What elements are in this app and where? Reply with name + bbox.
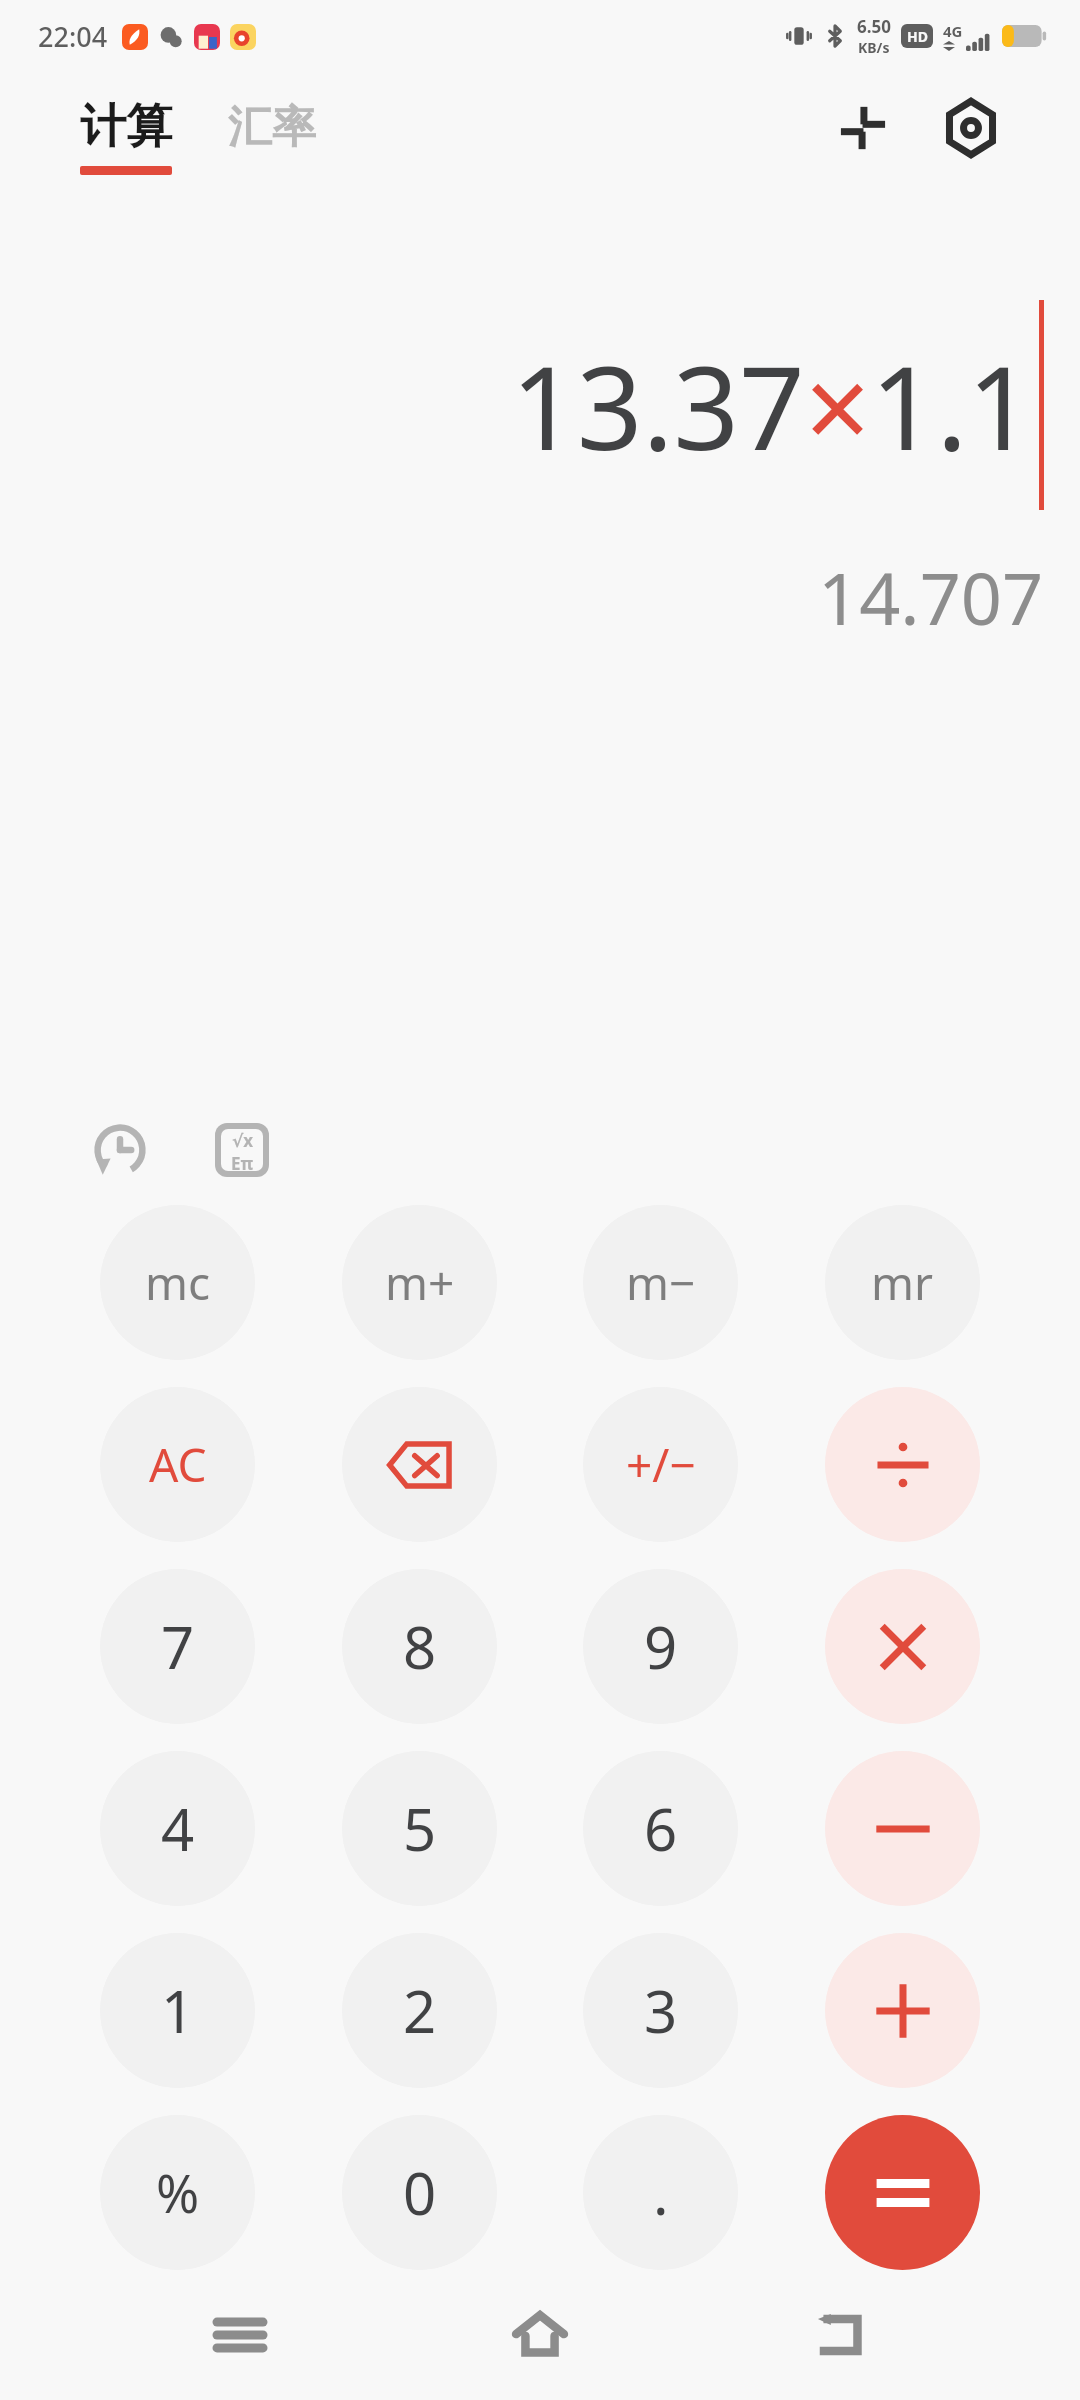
staticText: 5 <box>403 1789 437 1868</box>
button[interactable]: m− <box>583 1205 738 1360</box>
button[interactable]: 6 <box>583 1751 738 1906</box>
staticText: Eπ <box>231 1152 254 1171</box>
staticText: 3 <box>644 1971 678 2050</box>
button[interactable]: mc <box>100 1205 255 1360</box>
button[interactable]: m+ <box>342 1205 497 1360</box>
button[interactable]: % <box>100 2115 255 2270</box>
button[interactable]: 3 <box>583 1933 738 2088</box>
staticText: AC <box>149 1433 207 1496</box>
staticText: √x <box>232 1129 254 1152</box>
staticText: 计算 <box>80 98 172 156</box>
button[interactable]: Home <box>480 2275 600 2395</box>
button[interactable]: History <box>74 1104 166 1196</box>
button[interactable]: +/− <box>583 1387 738 1542</box>
button[interactable]: Divide <box>825 1387 980 1542</box>
staticText: 2 <box>403 1971 437 2050</box>
button[interactable]: Minus <box>825 1751 980 1906</box>
staticText: . <box>653 2153 669 2232</box>
button[interactable]: 计算 <box>80 98 172 175</box>
button[interactable]: Scientific <box>196 1104 288 1196</box>
staticText: m− <box>626 1251 696 1314</box>
button[interactable]: 8 <box>342 1569 497 1724</box>
staticText: 22:04 <box>38 18 108 55</box>
button[interactable]: Equals <box>825 2115 980 2270</box>
button[interactable]: . <box>583 2115 738 2270</box>
staticText: 13.37×1.1 <box>510 327 1033 484</box>
button[interactable]: 7 <box>100 1569 255 1724</box>
button[interactable]: mr <box>825 1205 980 1360</box>
staticText: 14.707 <box>818 548 1044 646</box>
button[interactable]: 汇率 <box>228 100 316 174</box>
staticText: KB/s <box>858 38 890 57</box>
staticText: % <box>156 2157 200 2228</box>
button[interactable]: Collapse <box>824 89 902 167</box>
staticText: 7 <box>161 1607 195 1686</box>
staticText: 4G <box>943 21 963 41</box>
button[interactable]: Multiply <box>825 1569 980 1724</box>
button[interactable]: 9 <box>583 1569 738 1724</box>
button[interactable]: 4 <box>100 1751 255 1906</box>
button[interactable]: Back <box>780 2275 900 2395</box>
staticText: 6.50 <box>857 15 891 38</box>
button[interactable]: Plus <box>825 1933 980 2088</box>
staticText: 9 <box>644 1607 678 1686</box>
staticText: mr <box>871 1251 934 1314</box>
button[interactable]: Recents <box>180 2275 300 2395</box>
button[interactable]: 2 <box>342 1933 497 2088</box>
staticText: +/− <box>626 1433 696 1496</box>
button[interactable]: 1 <box>100 1933 255 2088</box>
button[interactable]: Backspace <box>342 1387 497 1542</box>
staticText: m+ <box>385 1251 455 1314</box>
button[interactable]: 0 <box>342 2115 497 2270</box>
staticText: HD <box>907 27 928 46</box>
staticText: 汇率 <box>228 100 316 155</box>
staticText: 1 <box>161 1971 195 2050</box>
button[interactable]: 5 <box>342 1751 497 1906</box>
button[interactable]: AC <box>100 1387 255 1542</box>
staticText: 8 <box>403 1607 437 1686</box>
button[interactable]: Settings <box>932 89 1010 167</box>
staticText: 4 <box>161 1789 195 1868</box>
staticText: mc <box>145 1251 211 1314</box>
staticText: 6 <box>644 1789 678 1868</box>
staticText: 0 <box>403 2153 437 2232</box>
